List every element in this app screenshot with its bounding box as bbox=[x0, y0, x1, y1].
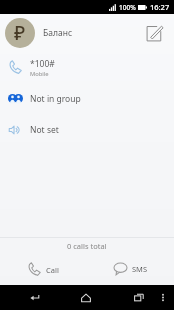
staticText: *100# bbox=[30, 58, 55, 70]
staticText: SMS bbox=[132, 264, 148, 274]
button[interactable]: Call *100# bbox=[0, 52, 174, 83]
button[interactable]: Group bbox=[0, 83, 174, 114]
button[interactable]: Contact photo bbox=[5, 18, 35, 48]
button[interactable]: More options bbox=[156, 285, 170, 310]
staticText: 16:27 bbox=[150, 2, 170, 12]
button[interactable]: Ringtone bbox=[0, 114, 174, 145]
button[interactable]: SMS bbox=[87, 253, 174, 285]
staticText: ₽ bbox=[14, 20, 26, 46]
button[interactable]: Edit bbox=[143, 21, 167, 45]
staticText: 100% bbox=[119, 3, 136, 12]
button[interactable]: Home bbox=[73, 285, 99, 310]
button[interactable]: Recent apps bbox=[126, 285, 152, 310]
staticText: Баланс bbox=[43, 27, 73, 39]
button[interactable]: Call bbox=[0, 253, 87, 285]
staticText: 0 calls total bbox=[67, 241, 107, 251]
button[interactable]: Back bbox=[22, 285, 48, 310]
staticText: Not set bbox=[30, 124, 59, 136]
staticText: Not in group bbox=[30, 93, 81, 105]
staticText: Mobile bbox=[30, 70, 49, 78]
staticText: Call bbox=[46, 265, 59, 275]
